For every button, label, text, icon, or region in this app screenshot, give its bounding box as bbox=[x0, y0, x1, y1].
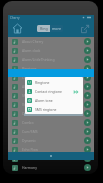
staticText: more bbox=[52, 26, 61, 31]
staticText: Ringtone bbox=[22, 66, 84, 71]
button[interactable]: Share bbox=[78, 22, 92, 36]
button[interactable]: Glow bbox=[8, 154, 94, 163]
button[interactable]: SMS ringtone bbox=[25, 105, 83, 114]
staticText: Alarm tone bbox=[35, 98, 53, 103]
staticText: Contact ringtone bbox=[22, 75, 84, 80]
button[interactable]: Echo Flow bbox=[8, 145, 94, 154]
button[interactable]: About Cherry bbox=[8, 37, 94, 46]
button[interactable]: Vitamin bbox=[8, 100, 94, 109]
staticText: Echo Flow bbox=[22, 147, 84, 152]
button[interactable]: Cuer/SMS bbox=[8, 127, 94, 136]
button[interactable]: Contact ringtone bbox=[25, 87, 83, 96]
staticText: Classic bbox=[22, 111, 84, 116]
button[interactable]: Alarm/LittleThinking bbox=[8, 55, 94, 64]
staticText: Cherry bbox=[10, 16, 20, 20]
button[interactable]: Harmony bbox=[8, 163, 94, 172]
staticText: Ring bbox=[40, 26, 48, 31]
staticText: Alarm tone bbox=[22, 84, 84, 89]
staticText: SMS ringtone bbox=[22, 93, 84, 98]
button[interactable]: more bbox=[50, 25, 63, 32]
staticText: Ringtone bbox=[35, 80, 50, 85]
button[interactable]: Ring bbox=[37, 25, 50, 32]
staticText: Vitamin bbox=[22, 102, 84, 107]
button[interactable]: Combo bbox=[8, 118, 94, 127]
button[interactable]: Home bbox=[10, 21, 25, 36]
staticText: Dynamic bbox=[22, 138, 84, 143]
button[interactable]: Alarm clock bbox=[8, 46, 94, 55]
staticText: Alarm clock bbox=[22, 48, 84, 53]
button[interactable]: SMS ringtone bbox=[8, 91, 94, 100]
button[interactable]: Ringtone bbox=[8, 64, 94, 73]
staticText: Alarm/LittleThinking bbox=[22, 57, 84, 62]
staticText: Harmony bbox=[22, 165, 84, 170]
staticText: SMS ringtone bbox=[35, 107, 57, 112]
staticText: Glow bbox=[22, 156, 84, 161]
button[interactable]: Classic bbox=[8, 109, 94, 118]
staticText: About Cherry bbox=[22, 39, 84, 44]
button[interactable]: Dynamic bbox=[8, 136, 94, 145]
button[interactable]: Alarm tone bbox=[8, 82, 94, 91]
button[interactable]: Alarm tone bbox=[25, 96, 83, 105]
button[interactable]: Ringtone bbox=[25, 78, 83, 87]
staticText: Combo bbox=[22, 120, 84, 125]
staticText: Cuer/SMS bbox=[22, 129, 84, 134]
button[interactable]: Contact ringtone bbox=[8, 73, 94, 82]
staticText: Contact ringtone bbox=[35, 89, 62, 94]
